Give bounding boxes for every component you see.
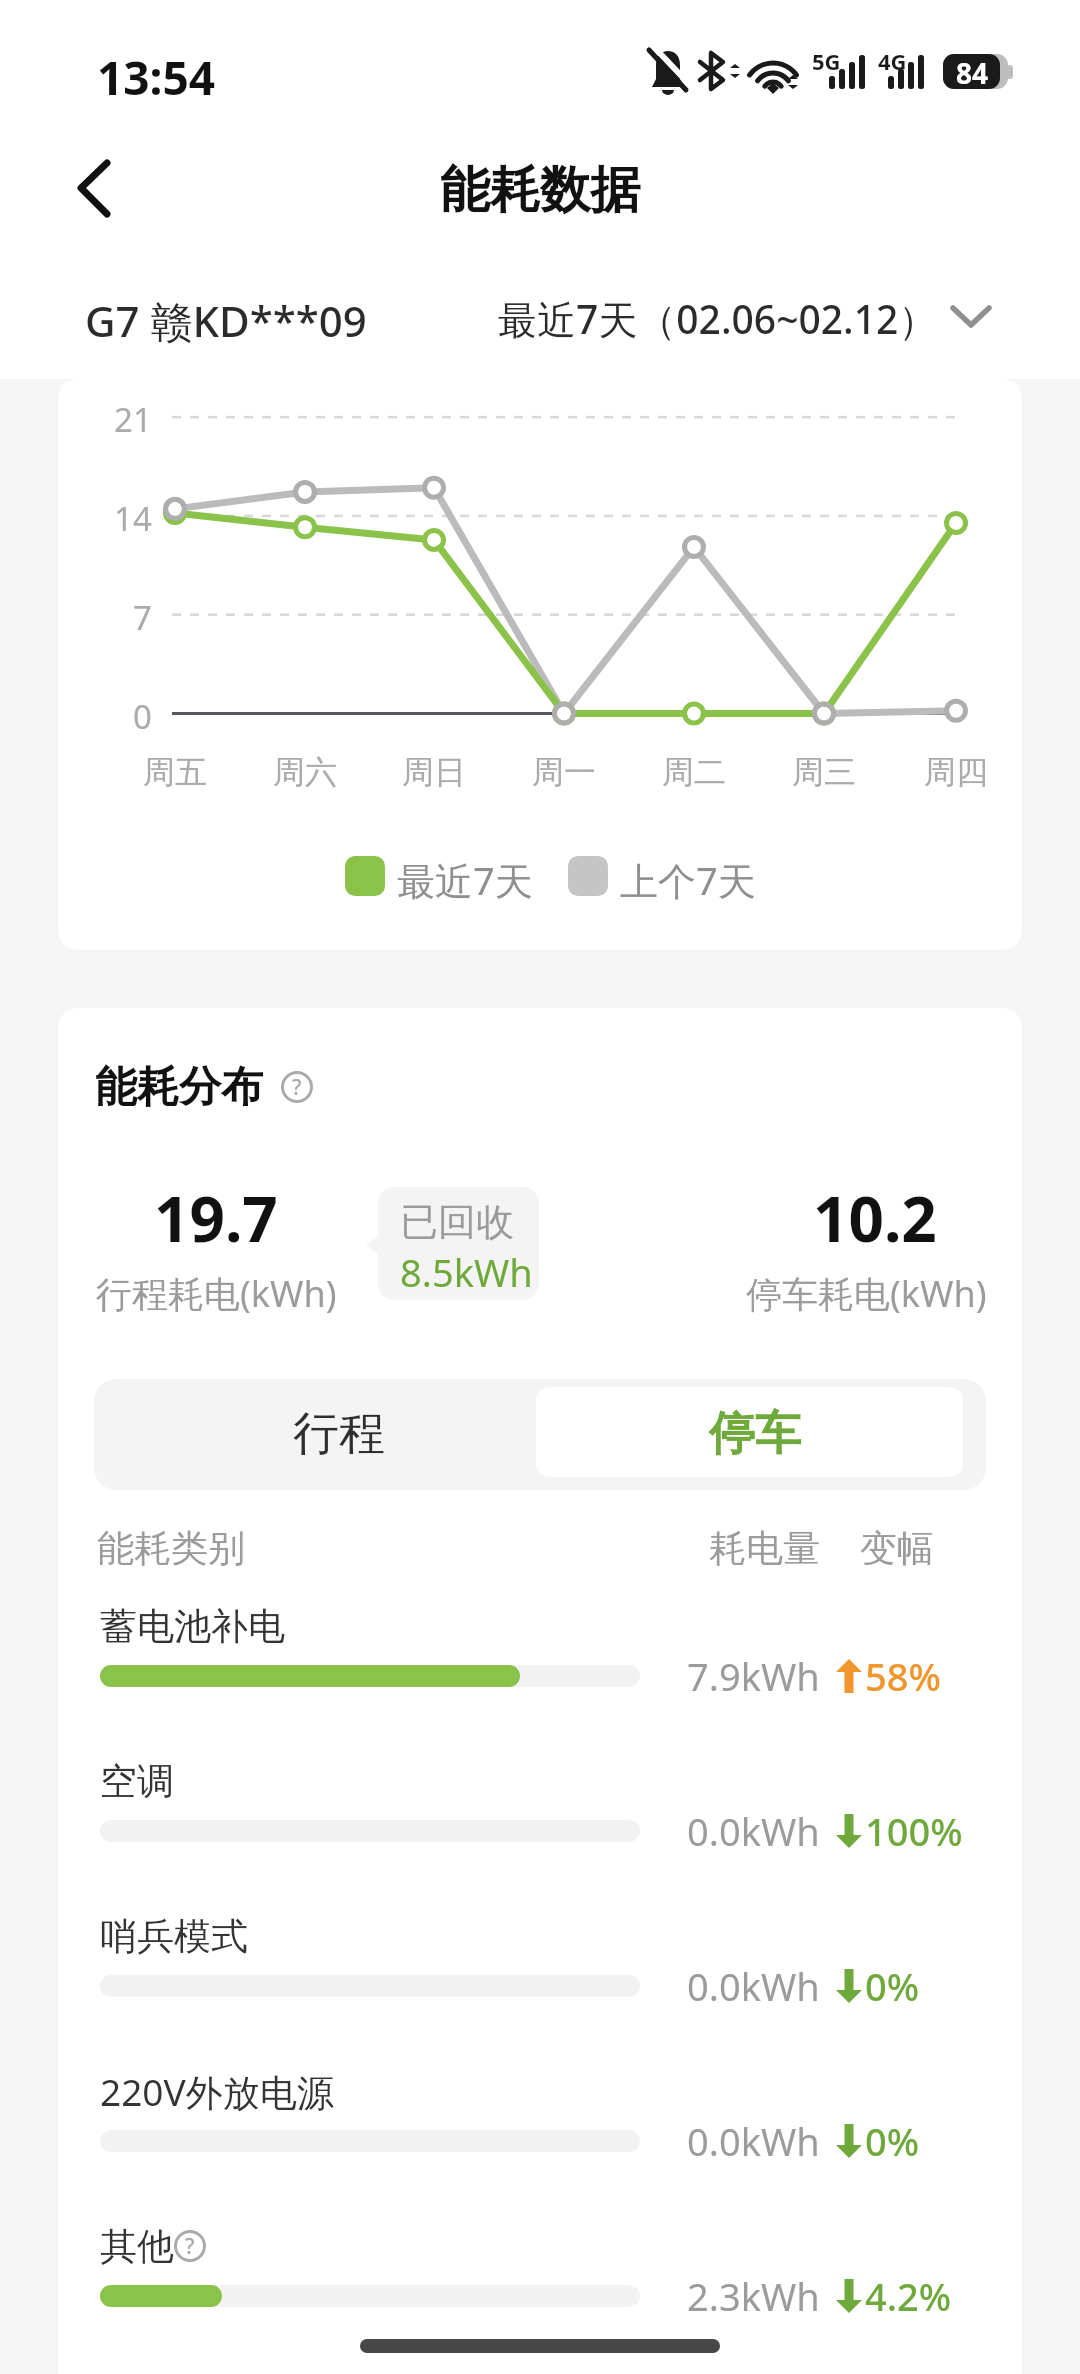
staticText: 14 bbox=[114, 496, 152, 536]
staticText: 变幅 bbox=[860, 1525, 934, 1572]
staticText: 21 bbox=[114, 397, 152, 437]
staticText: 其他 bbox=[100, 2223, 174, 2270]
staticText: 能耗分布 bbox=[95, 1061, 263, 1114]
staticText: 0.0kWh bbox=[687, 1960, 820, 2012]
staticText: 84 bbox=[956, 54, 989, 90]
staticText: 8.5kWh bbox=[400, 1246, 533, 1290]
button[interactable] bbox=[94, 1379, 536, 1490]
staticText: ? bbox=[185, 2232, 195, 2261]
staticText: 已回收 bbox=[400, 1198, 514, 1242]
staticText: 100% bbox=[865, 1805, 963, 1857]
staticText: 蓄电池补电 bbox=[100, 1603, 285, 1650]
staticText: 0 bbox=[133, 694, 152, 734]
staticText: 10.2 bbox=[813, 1176, 937, 1260]
staticText: 4.2% bbox=[865, 2270, 952, 2322]
staticText: 周四 bbox=[924, 752, 988, 792]
staticText: 最近7天 bbox=[397, 854, 533, 898]
staticText: 停车 bbox=[709, 1405, 801, 1463]
button[interactable]: ? bbox=[280, 1070, 314, 1104]
staticText: 7.9kWh bbox=[687, 1650, 820, 1702]
staticText: 0% bbox=[865, 2115, 920, 2167]
staticText: 行程 bbox=[293, 1405, 385, 1463]
staticText: 周六 bbox=[273, 752, 337, 792]
staticText: 周二 bbox=[662, 752, 726, 792]
staticText: 哨兵模式 bbox=[100, 1913, 248, 1960]
staticText: 周五 bbox=[143, 752, 207, 792]
button[interactable] bbox=[536, 1387, 963, 1477]
staticText: ? bbox=[292, 1073, 302, 1102]
staticText: 58% bbox=[865, 1650, 941, 1702]
staticText: 5G bbox=[812, 46, 841, 74]
staticText: 4G bbox=[878, 46, 907, 74]
staticText: 0.0kWh bbox=[687, 2115, 820, 2167]
button[interactable] bbox=[50, 145, 140, 235]
button[interactable]: 最近7天（02.06~02.12） bbox=[480, 280, 1020, 350]
staticText: 周一 bbox=[532, 752, 596, 792]
staticText: 周日 bbox=[402, 752, 466, 792]
staticText: 7 bbox=[133, 595, 152, 635]
staticText: 0.0kWh bbox=[687, 1805, 820, 1857]
staticText: 19.7 bbox=[154, 1176, 278, 1260]
staticText: G7 赣KD***09 bbox=[85, 292, 367, 340]
staticText: 能耗类别 bbox=[97, 1525, 245, 1572]
button[interactable]: ? bbox=[173, 2229, 207, 2263]
staticText: 能耗数据 bbox=[440, 159, 640, 222]
staticText: 停车耗电(kWh) bbox=[746, 1269, 987, 1313]
staticText: 2.3kWh bbox=[687, 2270, 820, 2322]
staticText: 空调 bbox=[100, 1758, 174, 1805]
staticText: 行程耗电(kWh) bbox=[96, 1269, 337, 1313]
staticText: 220V外放电源 bbox=[100, 2066, 334, 2117]
staticText: 周三 bbox=[792, 752, 856, 792]
staticText: 0% bbox=[865, 1960, 920, 2012]
staticText: 耗电量 bbox=[709, 1525, 820, 1572]
staticText: 最近7天（02.06~02.12） bbox=[498, 292, 938, 340]
staticText: 13:54 bbox=[97, 46, 216, 98]
staticText: 上个7天 bbox=[620, 854, 756, 898]
